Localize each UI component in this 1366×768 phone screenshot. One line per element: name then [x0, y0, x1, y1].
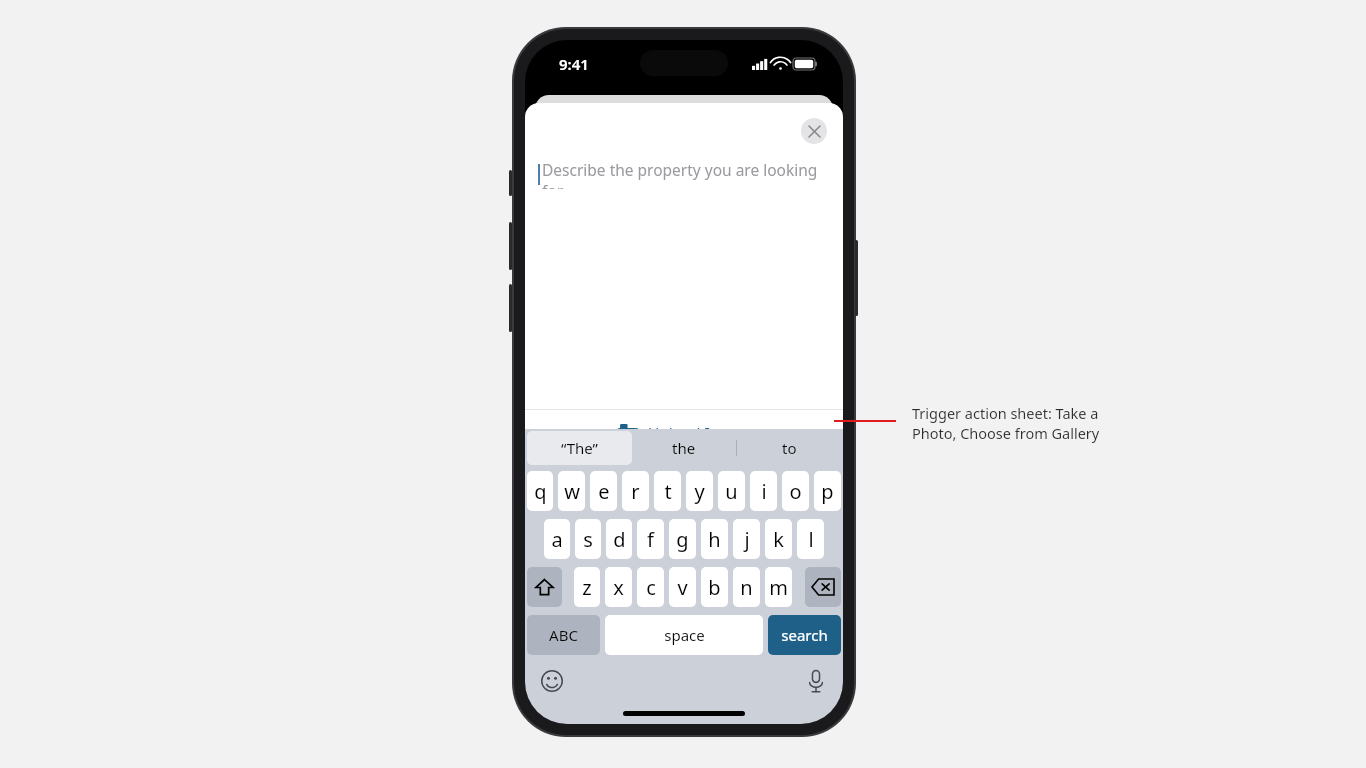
button[interactable]: d — [606, 519, 632, 559]
staticText: r — [631, 478, 640, 505]
staticText: p — [821, 478, 834, 505]
staticText: z — [582, 574, 592, 601]
staticText: l — [808, 526, 814, 553]
staticText: s — [583, 526, 593, 553]
staticText: y — [694, 478, 705, 505]
button[interactable]: m — [765, 567, 792, 607]
button[interactable]: v — [669, 567, 696, 607]
staticText: v — [677, 574, 688, 601]
staticText: t — [664, 478, 672, 505]
button[interactable]: h — [701, 519, 728, 559]
button[interactable]: Upload Image — [525, 410, 843, 456]
button[interactable]: t — [654, 471, 681, 511]
staticText: Describe the property you are looking fo… — [542, 159, 843, 189]
staticText: 9:41 — [559, 54, 589, 74]
staticText: c — [646, 574, 656, 601]
staticText: u — [725, 478, 738, 505]
staticText: space — [664, 625, 705, 645]
button[interactable]: s — [575, 519, 601, 559]
button[interactable]: y — [686, 471, 713, 511]
staticText: d — [613, 526, 626, 553]
button[interactable]: space — [605, 615, 763, 655]
button[interactable]: Close — [801, 118, 827, 144]
staticText: n — [740, 574, 753, 601]
button[interactable]: u — [718, 471, 745, 511]
staticText: x — [613, 574, 624, 601]
staticText: Photo, Choose from Gallery — [912, 423, 1100, 443]
button[interactable]: o — [782, 471, 809, 511]
staticText: j — [744, 526, 750, 553]
staticText: to — [782, 438, 797, 458]
button[interactable]: to — [737, 429, 841, 467]
button[interactable]: p — [814, 471, 841, 511]
staticText: “The” — [561, 438, 598, 458]
button[interactable]: j — [733, 519, 760, 559]
staticText: w — [564, 478, 580, 505]
button[interactable]: a — [544, 519, 570, 559]
staticText: o — [789, 478, 802, 505]
staticText: m — [769, 574, 788, 601]
staticText: e — [598, 478, 610, 505]
staticText: ABC — [549, 625, 578, 645]
staticText: k — [773, 526, 784, 553]
button[interactable]: e — [590, 471, 617, 511]
button[interactable]: Backspace — [805, 567, 841, 607]
button[interactable]: search — [768, 615, 841, 655]
button[interactable]: l — [797, 519, 824, 559]
staticText: g — [676, 526, 689, 553]
button[interactable]: the — [632, 429, 736, 467]
button[interactable]: c — [637, 567, 664, 607]
button[interactable]: f — [637, 519, 664, 559]
staticText: b — [708, 574, 721, 601]
staticText: search — [781, 625, 828, 645]
button[interactable]: Shift — [527, 567, 562, 607]
staticText: h — [708, 526, 721, 553]
staticText: Upload Image — [648, 423, 752, 444]
staticText: a — [551, 526, 563, 553]
button[interactable]: g — [669, 519, 696, 559]
button[interactable]: z — [574, 567, 600, 607]
button[interactable]: ABC — [527, 615, 600, 655]
staticText: q — [534, 478, 547, 505]
staticText: Trigger action sheet: Take a — [912, 403, 1099, 423]
staticText: the — [672, 438, 696, 458]
staticText: i — [761, 478, 767, 505]
staticText: f — [647, 526, 654, 553]
button[interactable]: Describe the property you are looking fo… — [538, 159, 843, 189]
button[interactable]: “The” — [527, 431, 632, 465]
button[interactable]: x — [605, 567, 632, 607]
button[interactable]: r — [622, 471, 649, 511]
button[interactable]: w — [558, 471, 585, 511]
button[interactable]: n — [733, 567, 760, 607]
button[interactable]: Dictate — [799, 664, 833, 698]
button[interactable]: Emoji — [535, 664, 569, 698]
button[interactable]: q — [527, 471, 553, 511]
button[interactable]: i — [750, 471, 777, 511]
button[interactable]: k — [765, 519, 792, 559]
button[interactable]: b — [701, 567, 728, 607]
